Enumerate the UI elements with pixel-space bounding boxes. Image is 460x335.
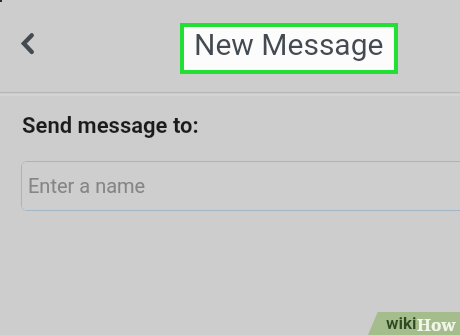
staticText: Enter a name [28,174,146,197]
staticText: How [417,313,456,335]
staticText: wiki [386,313,417,333]
button[interactable]: New Message [184,27,394,70]
button[interactable]: Enter a name [21,161,460,211]
staticText: New Message [194,27,384,62]
staticText: Send message to: [22,113,199,139]
button[interactable]: Back [5,19,49,63]
